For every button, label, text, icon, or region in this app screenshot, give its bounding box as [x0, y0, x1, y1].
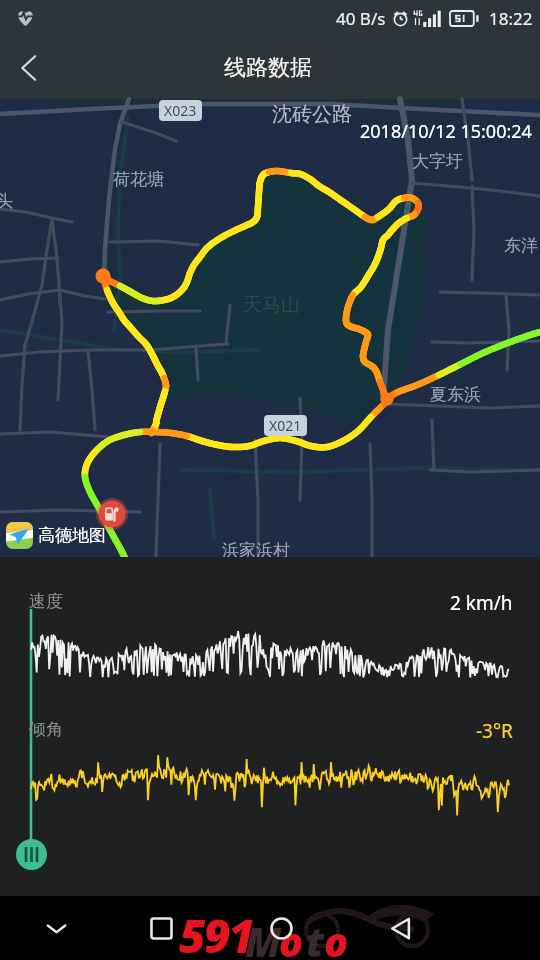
staticText: X021 — [269, 416, 302, 435]
staticText: 大字圩 — [412, 151, 463, 172]
staticText: 2 km/h — [450, 590, 513, 616]
staticText: X023 — [164, 101, 197, 120]
button[interactable]: Recents — [139, 906, 183, 950]
staticText: -3°R — [476, 718, 513, 744]
button[interactable]: Back — [379, 906, 423, 950]
button[interactable]: Back — [0, 39, 58, 97]
staticText: 天马山 — [243, 293, 300, 317]
staticText: 夏东浜 — [430, 384, 481, 405]
staticText: 18:22 — [489, 7, 533, 30]
staticText: o — [279, 914, 304, 960]
button[interactable]: Home — [259, 906, 303, 950]
staticText: M — [245, 914, 282, 960]
button[interactable]: Hide — [34, 906, 78, 950]
staticText: 2018/10/12 15:00:24 — [360, 119, 532, 144]
staticText: 倾角 — [29, 719, 63, 740]
staticText: 速度 — [29, 591, 63, 612]
staticText: 荷花塘 — [113, 169, 164, 190]
staticText: t — [306, 914, 325, 960]
staticText: 东洋 — [504, 235, 538, 256]
staticText: 浜家浜村 — [222, 540, 290, 561]
button[interactable]: Scrub timeline — [16, 839, 47, 870]
staticText: 40 B/s — [336, 7, 386, 30]
staticText: 高德地图 — [38, 525, 106, 546]
staticText: 线路数据 — [224, 54, 312, 82]
staticText: 沈砖公路 — [272, 102, 352, 127]
staticText: o — [324, 914, 349, 960]
staticText: 头 — [0, 191, 13, 212]
staticText: 591 — [179, 904, 254, 960]
